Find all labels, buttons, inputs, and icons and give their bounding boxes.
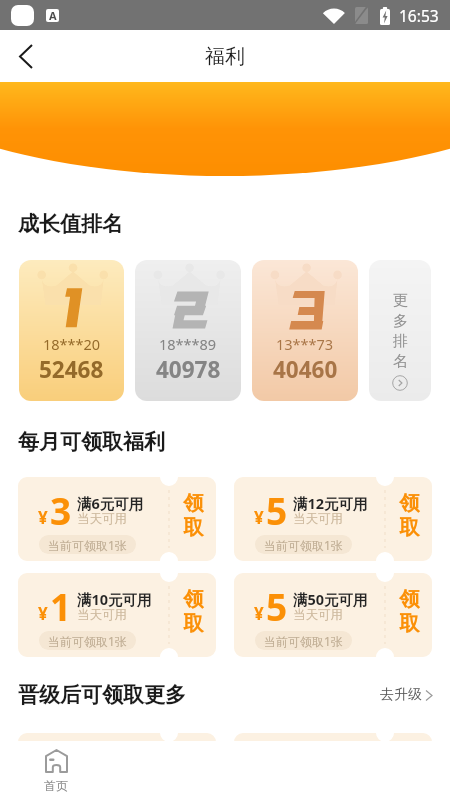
button[interactable]: 领 取 (169, 733, 216, 800)
staticText: 当前可领取1张 (48, 537, 127, 553)
button[interactable]: 13***73 (252, 260, 358, 401)
button[interactable]: 首页 (0, 741, 112, 800)
staticText: 52468 (39, 354, 104, 385)
staticText: ¥ (254, 506, 264, 529)
staticText: 满50元可用 (293, 589, 368, 609)
staticText: 更 多 排 名 (393, 291, 408, 371)
button[interactable]: 18***20 (19, 260, 124, 401)
staticText: 领 取 (183, 490, 204, 540)
staticText: 领 取 (399, 586, 420, 636)
staticText: 满10元可用 (77, 589, 152, 609)
staticText: 5 (266, 581, 288, 631)
button[interactable]: 领 取 (169, 573, 216, 657)
button[interactable]: ¥ (18, 477, 216, 561)
button[interactable]: 领 取 (385, 477, 432, 561)
staticText: 16:53 (399, 5, 439, 26)
staticText: 13***73 (276, 334, 334, 354)
staticText: 18***20 (43, 334, 101, 354)
staticText: 福利 (205, 44, 245, 69)
staticText: 5 (266, 485, 288, 535)
staticText: 成长值排名 (18, 211, 123, 237)
staticText: ¥ (38, 506, 48, 529)
button[interactable]: ¥ (18, 733, 216, 800)
staticText: ¥ (38, 602, 48, 625)
staticText: 40460 (273, 354, 338, 385)
staticText: 领 取 (399, 490, 420, 540)
staticText: 满12元可用 (293, 493, 368, 513)
button[interactable]: ¥ (234, 477, 432, 561)
staticText: A (49, 9, 57, 21)
button[interactable]: 领 取 (169, 477, 216, 561)
button[interactable]: 去升级 (380, 686, 432, 704)
staticText: 当天可用 (293, 607, 343, 623)
button[interactable]: 领 取 (385, 733, 432, 800)
button[interactable]: ¥ (234, 573, 432, 657)
button[interactable]: 18***89 (135, 260, 241, 401)
staticText: 满6元可用 (77, 493, 144, 513)
staticText: 当前可领取1张 (264, 537, 343, 553)
staticText: 领 取 (183, 586, 204, 636)
staticText: 当前可领取1张 (48, 633, 127, 649)
button[interactable]: Back (0, 30, 52, 82)
staticText: 40978 (156, 354, 221, 385)
button[interactable]: 更 多 排 名 (369, 260, 431, 401)
staticText: ¥ (254, 602, 264, 625)
staticText: 当天可用 (77, 607, 127, 623)
staticText: 18***89 (159, 334, 217, 354)
button[interactable]: ¥ (234, 733, 432, 800)
staticText: 当天可用 (77, 511, 127, 527)
staticText: 当前可领取1张 (264, 633, 343, 649)
staticText: 去升级 (380, 686, 422, 704)
staticText: 领 取 (399, 738, 420, 788)
staticText: ¥ (38, 762, 48, 785)
staticText: 3 (50, 485, 72, 535)
staticText: 首页 (44, 778, 68, 793)
button[interactable]: 领 取 (385, 573, 432, 657)
staticText: 每月可领取福利 (18, 429, 165, 455)
staticText: 1 (50, 581, 72, 631)
staticText: 领 取 (183, 738, 204, 788)
staticText: 晋级后可领取更多 (18, 682, 186, 708)
staticText: 5 (50, 741, 72, 791)
button[interactable]: ¥ (18, 573, 216, 657)
staticText: 当天可用 (293, 511, 343, 527)
